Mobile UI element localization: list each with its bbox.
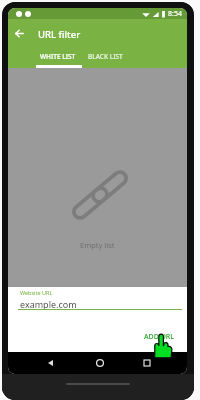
staticText: WHITE LIST	[40, 52, 76, 61]
staticText: Website URL	[20, 289, 53, 296]
button[interactable]: Home	[93, 356, 107, 370]
staticText: BLACK LIST	[88, 52, 123, 61]
button[interactable]: BLACK LIST	[88, 47, 123, 68]
staticText: example.com	[20, 298, 77, 310]
staticText: ADD URL	[144, 332, 174, 342]
button[interactable]: ADD URL	[138, 328, 180, 346]
staticText: Empty list	[80, 240, 115, 250]
button[interactable]: WHITE LIST	[40, 47, 76, 68]
staticText: URL filter	[38, 28, 81, 41]
staticText: 8:54	[168, 9, 182, 19]
button[interactable]: Back	[43, 356, 57, 370]
button[interactable]: Back	[10, 24, 28, 42]
button[interactable]: Recents	[140, 356, 154, 370]
